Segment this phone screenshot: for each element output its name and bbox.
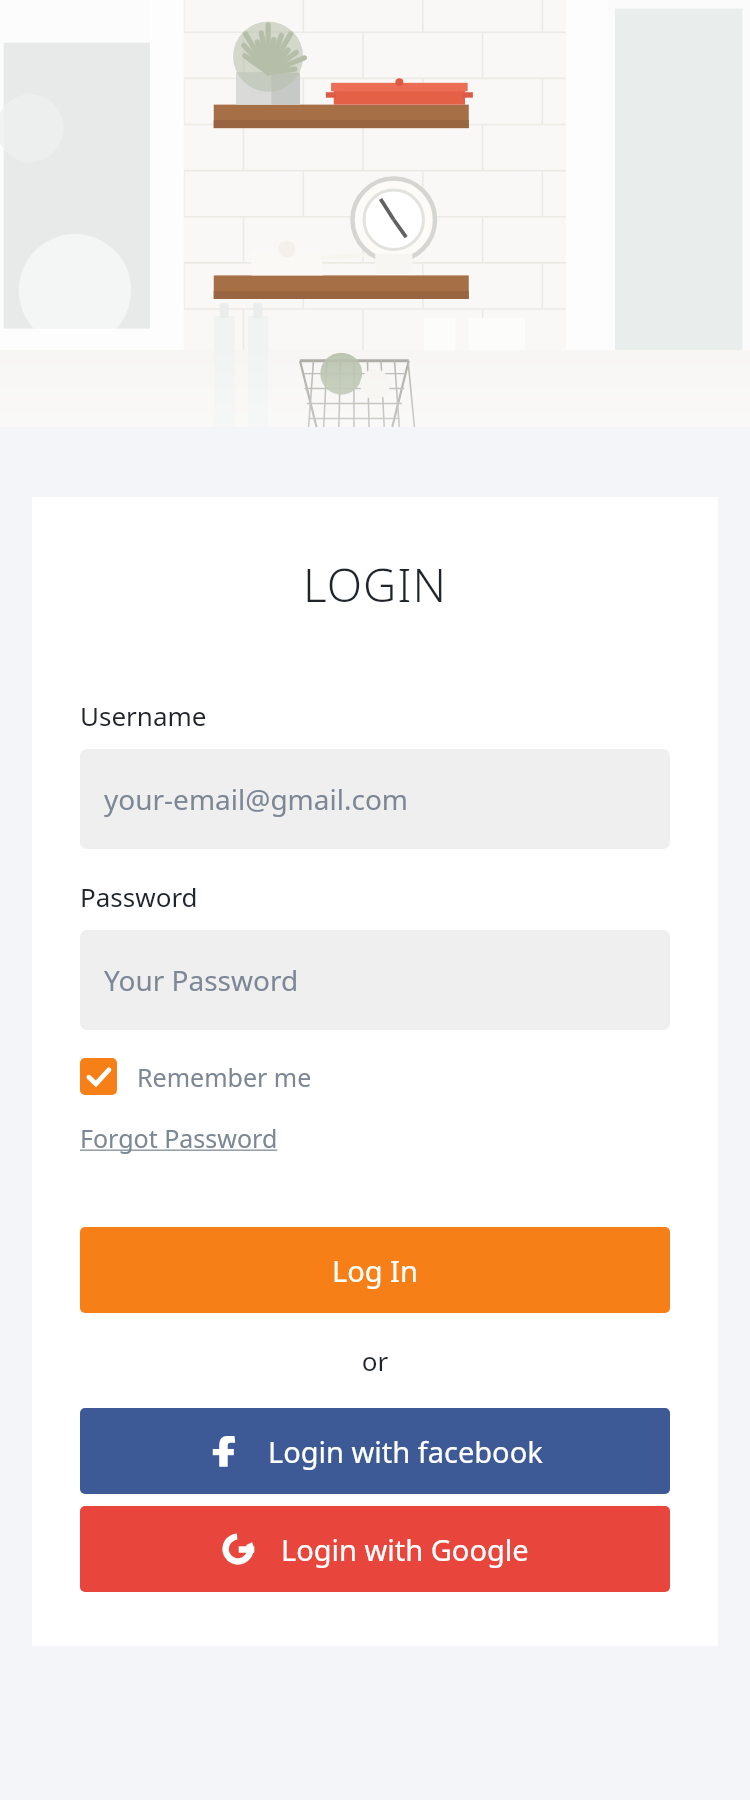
button[interactable]: Forgot Password (80, 1121, 278, 1155)
button[interactable]: Your Password (80, 930, 670, 1030)
button[interactable]: Login with Google (80, 1506, 670, 1592)
button[interactable]: your-email@gmail.com (80, 749, 670, 849)
staticText: Username (80, 698, 207, 733)
button[interactable]: Login with facebook (80, 1408, 670, 1494)
staticText: Password (80, 879, 198, 914)
staticText: Login with Google (281, 1530, 529, 1569)
staticText: your-email@gmail.com (104, 780, 409, 818)
staticText: Log In (332, 1251, 418, 1290)
staticText: Login with facebook (268, 1432, 543, 1471)
staticText: or (80, 1343, 670, 1378)
staticText: Your Password (104, 961, 299, 999)
button[interactable]: Log In (80, 1227, 670, 1313)
staticText: LOGIN (32, 553, 718, 616)
button[interactable]: Remember me (80, 1058, 312, 1095)
staticText: Remember me (137, 1060, 312, 1094)
